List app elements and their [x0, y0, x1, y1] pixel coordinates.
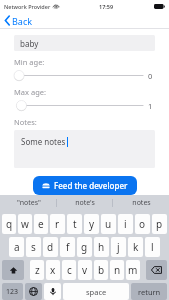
button[interactable]: e [34, 214, 48, 234]
button[interactable]: b [94, 260, 108, 280]
staticText: e [38, 217, 44, 231]
button[interactable]: a [9, 237, 24, 257]
button[interactable]: 123 [2, 283, 23, 300]
button[interactable]: r [50, 214, 65, 234]
button[interactable]: u [101, 214, 116, 234]
button[interactable]: j [111, 237, 126, 257]
button[interactable]: Delete [146, 260, 167, 280]
staticText: b [98, 263, 105, 277]
staticText: "notes" [17, 198, 41, 208]
button[interactable]: v [78, 260, 92, 280]
button[interactable]: Age slider [14, 70, 143, 81]
button[interactable]: return [131, 283, 167, 300]
staticText: y [89, 217, 95, 231]
staticText: Some notes [21, 136, 66, 147]
staticText: v [82, 263, 88, 277]
staticText: Min age: [14, 57, 45, 67]
button[interactable]: z [30, 260, 44, 280]
button[interactable]: notes [113, 195, 169, 211]
staticText: space [86, 287, 107, 297]
staticText: u [105, 217, 112, 231]
staticText: j [117, 240, 120, 254]
button[interactable]: Some notes [14, 130, 155, 168]
button[interactable]: l [145, 237, 160, 257]
staticText: p [156, 217, 163, 231]
button[interactable]: note's [57, 195, 113, 211]
button[interactable]: d [43, 237, 58, 257]
staticText: note's [75, 198, 95, 208]
button[interactable]: i [118, 214, 133, 234]
button[interactable]: m [126, 260, 140, 280]
button[interactable]: h [94, 237, 109, 257]
staticText: Network Provider [4, 3, 51, 10]
staticText: h [98, 240, 105, 254]
staticText: q [6, 217, 13, 231]
button[interactable]: w [18, 214, 32, 234]
staticText: i [124, 217, 127, 231]
staticText: 123 [6, 287, 19, 297]
button[interactable]: Switch keyboard [25, 283, 42, 300]
staticText: return [138, 287, 161, 297]
staticText: Max age: [14, 87, 46, 97]
staticText: baby [20, 38, 39, 49]
staticText: n [114, 263, 121, 277]
button[interactable]: Back [0, 12, 41, 29]
staticText: r [55, 217, 60, 231]
staticText: x [50, 263, 56, 277]
button[interactable]: o [135, 214, 150, 234]
button[interactable]: g [77, 237, 92, 257]
staticText: w [21, 217, 29, 231]
button[interactable]: x [46, 260, 60, 280]
staticText: c [67, 263, 72, 277]
button[interactable]: p [152, 214, 167, 234]
button[interactable]: Age slider [14, 100, 143, 111]
staticText: s [31, 240, 36, 254]
staticText: a [14, 240, 20, 254]
button[interactable]: f [60, 237, 75, 257]
button[interactable]: space [63, 283, 129, 300]
staticText: 17:59 [99, 3, 114, 10]
button[interactable]: t [67, 214, 82, 234]
staticText: g [81, 240, 88, 254]
button[interactable]: baby [14, 35, 155, 51]
staticText: o [139, 217, 146, 231]
button[interactable]: c [62, 260, 76, 280]
staticText: 0 [148, 71, 153, 81]
staticText: Notes: [14, 117, 37, 127]
button[interactable]: q [2, 214, 16, 234]
staticText: m [128, 263, 138, 277]
staticText: notes [132, 198, 151, 208]
button[interactable]: Shift [2, 260, 24, 280]
button[interactable]: n [110, 260, 124, 280]
button[interactable]: k [128, 237, 143, 257]
staticText: d [47, 240, 54, 254]
button[interactable]: s [26, 237, 41, 257]
staticText: Feed the developer [54, 180, 128, 191]
staticText: k [133, 240, 139, 254]
button[interactable]: Dictate [44, 283, 61, 300]
button[interactable]: Feed the developer [33, 176, 137, 195]
button[interactable]: "notes" [0, 195, 57, 211]
staticText: 1 [148, 101, 153, 111]
staticText: z [35, 263, 40, 277]
staticText: t [73, 217, 77, 231]
button[interactable]: y [84, 214, 99, 234]
staticText: f [66, 240, 70, 254]
staticText: l [151, 240, 154, 254]
staticText: Back [12, 15, 33, 26]
